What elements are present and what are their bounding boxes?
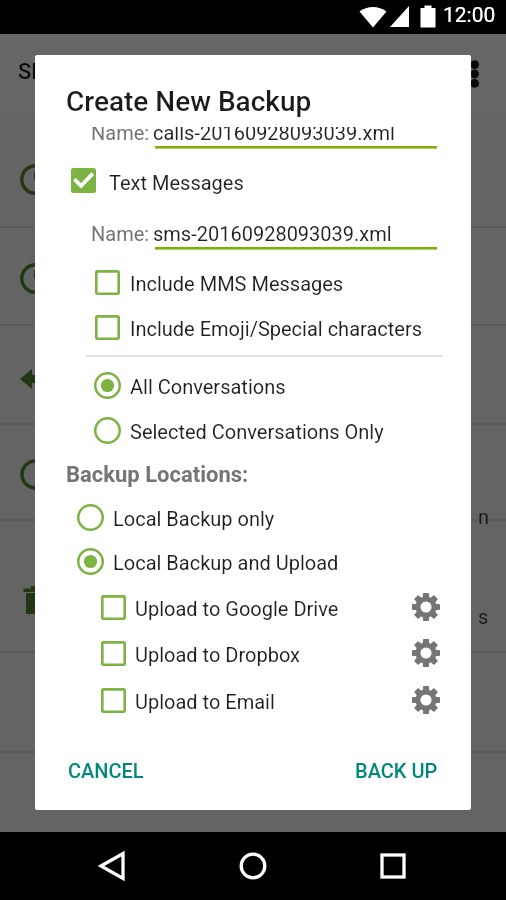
staticText: BACK UP <box>355 759 438 782</box>
button[interactable] <box>71 544 379 580</box>
button[interactable] <box>96 590 366 625</box>
button[interactable]: CANCEL <box>56 749 156 792</box>
staticText: calls-20160928093039.xml <box>153 127 395 144</box>
staticText: Local Backup and Upload <box>113 551 339 574</box>
staticText: Local Backup only <box>113 507 275 530</box>
button[interactable] <box>96 683 366 718</box>
button[interactable]: Email settings <box>404 678 448 722</box>
staticText: Create New Backup <box>66 85 312 118</box>
staticText: Name: <box>91 222 150 245</box>
button[interactable] <box>96 636 366 671</box>
staticText: 12:00 <box>443 3 496 28</box>
staticText: Upload to Email <box>135 690 275 713</box>
button[interactable]: Dropbox settings <box>404 631 448 675</box>
staticText: sms-20160928093039.xml <box>153 222 392 245</box>
button[interactable] <box>71 500 379 536</box>
staticText: Upload to Google Drive <box>135 597 339 620</box>
staticText: Include MMS Messages <box>130 272 344 295</box>
staticText: Selected Conversations Only <box>130 420 384 443</box>
staticText: Text Messages <box>109 171 244 194</box>
button[interactable]: Google Drive settings <box>404 585 448 629</box>
staticText: All Conversations <box>130 375 286 398</box>
staticText: SMS Backup+ <box>18 59 155 85</box>
button[interactable]: BACK UP <box>343 749 450 792</box>
button[interactable]: Recents <box>371 844 415 888</box>
button[interactable] <box>89 310 384 345</box>
button[interactable] <box>88 413 396 449</box>
staticText: s <box>478 605 489 628</box>
button[interactable] <box>66 164 311 197</box>
staticText: CANCEL <box>68 759 144 782</box>
staticText: Include Emoji/Special characters <box>130 317 422 340</box>
button[interactable] <box>89 265 384 300</box>
staticText: n <box>478 505 490 528</box>
staticText: Upload to Dropbox <box>135 643 300 666</box>
button[interactable] <box>88 368 396 404</box>
button[interactable]: Back <box>90 844 134 888</box>
staticText: Backup Locations: <box>66 462 249 488</box>
button[interactable]: Home <box>231 844 275 888</box>
staticText: Name: <box>91 127 150 144</box>
